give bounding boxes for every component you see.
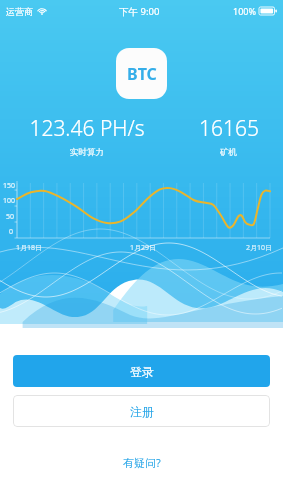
staticText: 1月18日 xyxy=(16,243,43,253)
staticText: 50 xyxy=(6,212,15,222)
staticText: BTC xyxy=(127,63,157,85)
staticText: 下午 9:00 xyxy=(119,5,160,18)
staticText: 登录 xyxy=(130,364,154,379)
button[interactable]: 有疑问? xyxy=(109,451,175,474)
staticText: 运营商 xyxy=(6,6,33,17)
staticText: 150 xyxy=(3,181,16,191)
button[interactable]: 注册 xyxy=(13,395,270,427)
staticText: 实时算力 xyxy=(70,147,104,158)
staticText: 2月10日 xyxy=(246,243,273,253)
staticText: 100 xyxy=(3,196,16,206)
staticText: 有疑问? xyxy=(123,455,161,470)
staticText: 100% xyxy=(233,5,256,17)
staticText: 0 xyxy=(9,227,14,237)
button[interactable]: 登录 xyxy=(13,355,270,387)
staticText: 123.46 PH/s xyxy=(29,114,145,143)
staticText: 注册 xyxy=(130,404,154,419)
staticText: 16165 xyxy=(199,114,259,143)
staticText: 矿机 xyxy=(220,147,237,158)
staticText: 1月29日 xyxy=(130,243,157,253)
